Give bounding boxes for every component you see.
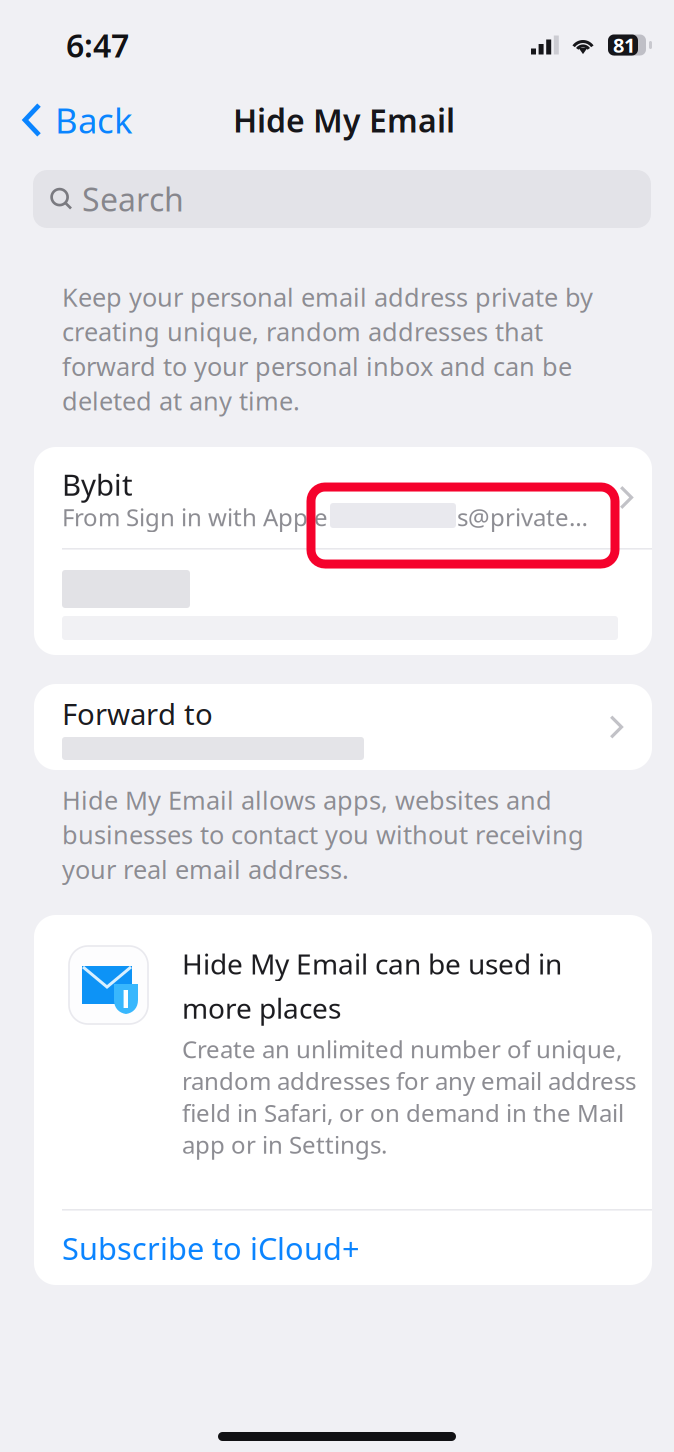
button[interactable]: Back [0, 94, 147, 146]
staticText: From Sign in with Apple [62, 501, 328, 533]
staticText: Keep your personal email address private… [62, 280, 593, 418]
staticText: Back [55, 97, 133, 143]
button[interactable] [34, 550, 652, 655]
staticText: s@private… [457, 501, 588, 533]
button[interactable]: Search [33, 170, 651, 228]
staticText: 6:47 [66, 24, 129, 66]
staticText: 81 [613, 32, 635, 58]
staticText: Create an unlimited number of unique, ra… [182, 1033, 636, 1160]
staticText: Hide My Email can be used in more places [182, 945, 562, 1026]
button[interactable]: Bybit [34, 447, 652, 548]
staticText: Forward to [62, 694, 213, 733]
staticText: Search [82, 178, 184, 220]
staticText: Hide My Email [233, 99, 455, 141]
staticText: Bybit [62, 465, 133, 504]
staticText: Hide My Email allows apps, websites and … [62, 783, 584, 886]
button[interactable]: Forward to [34, 684, 652, 770]
button[interactable]: Subscribe to iCloud+ [34, 1211, 652, 1285]
staticText: Subscribe to iCloud+ [62, 1228, 360, 1268]
